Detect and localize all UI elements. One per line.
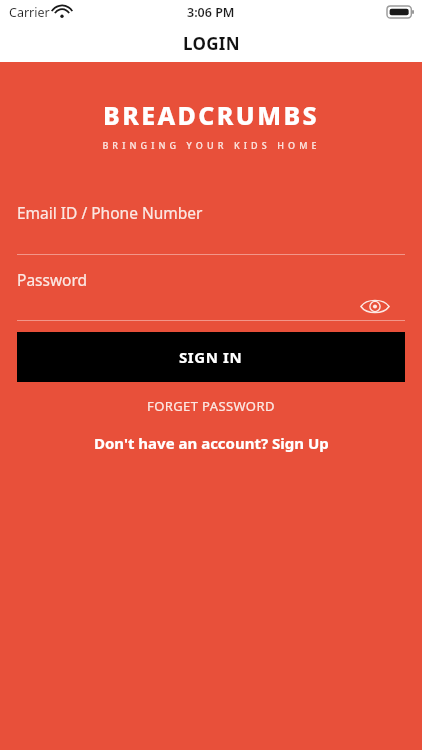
button[interactable]: SIGN IN bbox=[17, 332, 405, 382]
staticText: Carrier bbox=[9, 4, 50, 21]
staticText: Don't have an account? Sign Up bbox=[94, 433, 329, 453]
staticText: Password bbox=[17, 269, 88, 290]
staticText: FORGET PASSWORD bbox=[147, 397, 275, 415]
button[interactable]: Email ID / Phone Number bbox=[17, 202, 405, 255]
button[interactable]: Don't have an account? Sign Up bbox=[17, 429, 405, 457]
staticText: 3:06 PM bbox=[187, 4, 235, 21]
staticText: BREADCRUMBS bbox=[103, 98, 319, 132]
staticText: SIGN IN bbox=[179, 347, 243, 367]
staticText: BRINGING YOUR KIDS HOME bbox=[102, 139, 321, 151]
staticText: Email ID / Phone Number bbox=[17, 202, 203, 223]
button[interactable]: Show password bbox=[360, 298, 390, 315]
button[interactable]: Password bbox=[17, 269, 405, 321]
button[interactable]: FORGET PASSWORD bbox=[17, 390, 405, 422]
staticText: LOGIN bbox=[183, 32, 240, 55]
